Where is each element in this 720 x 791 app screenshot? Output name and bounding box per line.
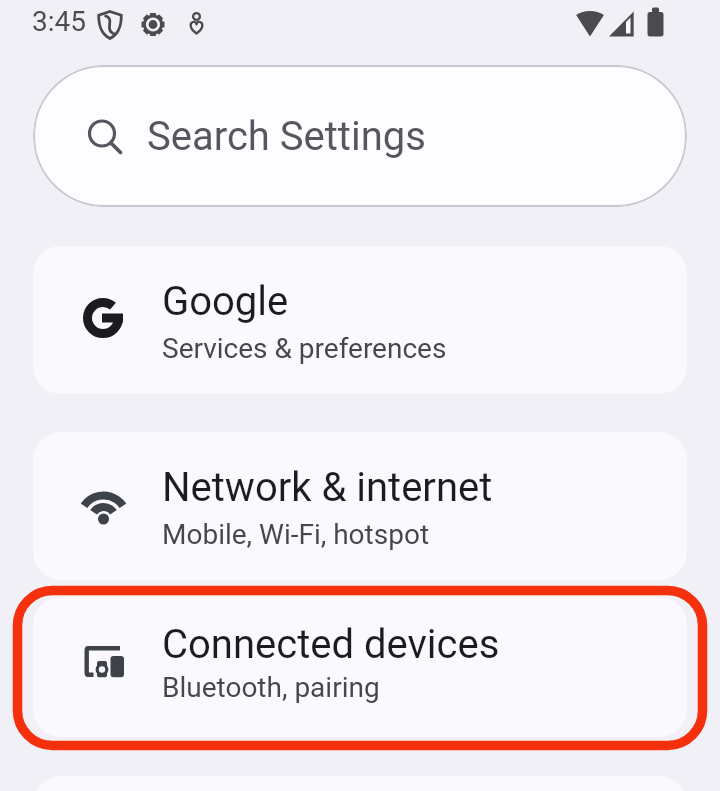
staticText: Connected devices: [162, 621, 500, 668]
staticText: Bluetooth, pairing: [162, 671, 380, 704]
button[interactable]: Connected devices: [33, 597, 687, 737]
button[interactable]: Network & internet: [33, 432, 687, 580]
staticText: 3:45: [32, 5, 86, 38]
staticText: Network & internet: [162, 464, 493, 511]
button[interactable]: Search Settings: [33, 65, 687, 207]
staticText: Services & preferences: [162, 332, 447, 365]
staticText: Search Settings: [147, 113, 426, 160]
staticText: Mobile, Wi-Fi, hotspot: [162, 518, 430, 551]
button[interactable]: Google: [33, 246, 687, 394]
staticText: Google: [162, 278, 289, 325]
